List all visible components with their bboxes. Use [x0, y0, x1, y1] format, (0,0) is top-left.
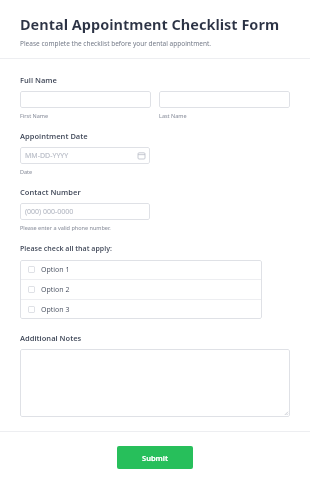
staticText: Submit	[142, 453, 168, 463]
staticText: MM-DD-YYYY	[25, 151, 138, 161]
button[interactable]: MM-DD-YYYY	[20, 147, 150, 164]
staticText: Full Name	[20, 75, 57, 85]
button[interactable]: Option 3	[20, 300, 262, 319]
staticText: Option 3	[41, 305, 70, 315]
staticText: Last Name	[159, 112, 187, 119]
button[interactable]: (000) 000-0000	[20, 203, 150, 220]
button[interactable]: Option 1	[20, 260, 262, 279]
staticText: First Name	[20, 112, 49, 119]
staticText: Option 1	[41, 265, 70, 275]
staticText: Please check all that apply:	[20, 244, 112, 254]
button[interactable]: Option 2	[20, 280, 262, 299]
button[interactable]	[20, 349, 290, 417]
staticText: Dental Appointment Checklist Form	[20, 14, 280, 34]
button[interactable]: Submit	[117, 446, 193, 469]
staticText: Appointment Date	[20, 131, 88, 141]
staticText: Date	[20, 168, 33, 175]
staticText: Additional Notes	[20, 333, 82, 343]
staticText: Contact Number	[20, 187, 81, 197]
staticText: Please enter a valid phone number.	[20, 224, 111, 231]
button[interactable]	[159, 91, 290, 108]
button[interactable]	[20, 91, 151, 108]
staticText: Option 2	[41, 285, 70, 295]
staticText: (000) 000-0000	[25, 207, 145, 217]
staticText: Please complete the checklist before you…	[20, 39, 212, 48]
